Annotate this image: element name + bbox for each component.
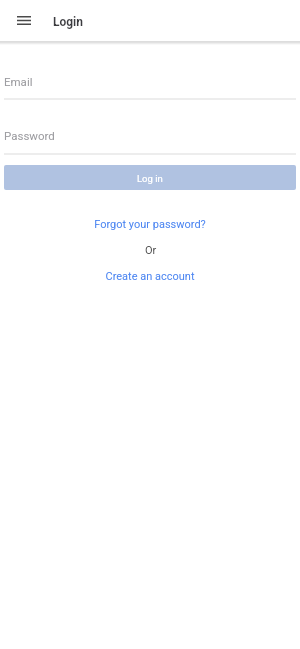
staticText: Email — [4, 75, 33, 88]
button[interactable]: Password — [4, 123, 296, 154]
button[interactable]: Create an account — [0, 269, 300, 284]
staticText: Or — [145, 244, 157, 257]
staticText: Log in — [137, 173, 163, 184]
button[interactable]: Open navigation menu — [10, 7, 37, 34]
button[interactable]: Email — [4, 68, 296, 99]
button[interactable]: Log in — [4, 165, 296, 190]
staticText: Create an account — [105, 270, 195, 283]
staticText: Login — [53, 15, 84, 29]
button[interactable]: Forgot your password? — [0, 217, 300, 232]
staticText: Forgot your password? — [94, 218, 206, 231]
staticText: Password — [4, 129, 55, 142]
